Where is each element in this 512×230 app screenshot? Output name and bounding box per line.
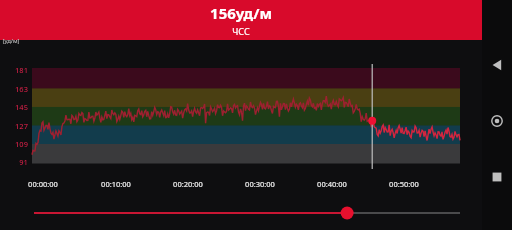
staticText: 00:00:00: [28, 179, 58, 189]
button[interactable]: Временной ползунок: [0, 195, 482, 230]
staticText: 127: [15, 121, 28, 131]
staticText: 00:40:00: [317, 179, 347, 189]
staticText: 109: [15, 139, 28, 149]
staticText: 00:10:00: [101, 179, 131, 189]
staticText: 156уд/м: [210, 3, 272, 23]
button[interactable]: Назад: [484, 52, 510, 78]
button[interactable]: Недавние приложения: [484, 164, 510, 190]
staticText: [уд/м]: [2, 37, 20, 45]
button[interactable]: 156уд/м: [0, 0, 482, 40]
staticText: 00:30:00: [245, 179, 275, 189]
staticText: 181: [15, 65, 28, 75]
staticText: 91: [19, 157, 28, 167]
button[interactable]: Главный экран: [484, 108, 510, 134]
staticText: 00:20:00: [173, 179, 203, 189]
staticText: 145: [15, 102, 28, 112]
staticText: 163: [15, 84, 28, 94]
staticText: ЧСС: [232, 25, 250, 37]
staticText: 00:50:00: [389, 179, 419, 189]
